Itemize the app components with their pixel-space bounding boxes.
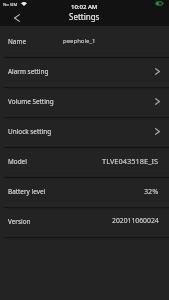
staticText: TLVE043518E_IS [102,156,159,166]
staticText: Settings [69,11,100,22]
button[interactable]: Unlock setting [0,116,169,146]
button[interactable]: Name [0,26,169,56]
button[interactable]: Version [0,206,169,236]
staticText: 202011060024 [112,216,159,225]
staticText: Unlock setting [8,127,52,136]
staticText: No SIM [3,2,18,8]
staticText: 10:02 AM [71,3,98,11]
button[interactable]: Back [0,11,28,26]
button[interactable]: Alarm setting [0,56,169,86]
staticText: Model [8,157,27,166]
button[interactable]: Volume Setting [0,86,169,116]
staticText: Battery level [8,187,46,196]
staticText: Name [8,37,27,46]
staticText: Alarm setting [8,67,49,76]
staticText: Volume Setting [8,97,54,106]
button[interactable]: Model [0,146,169,176]
staticText: Version [8,217,31,226]
button[interactable]: Battery level [0,176,169,206]
staticText: peephole_1 [63,37,96,45]
staticText: 32% [144,186,159,196]
